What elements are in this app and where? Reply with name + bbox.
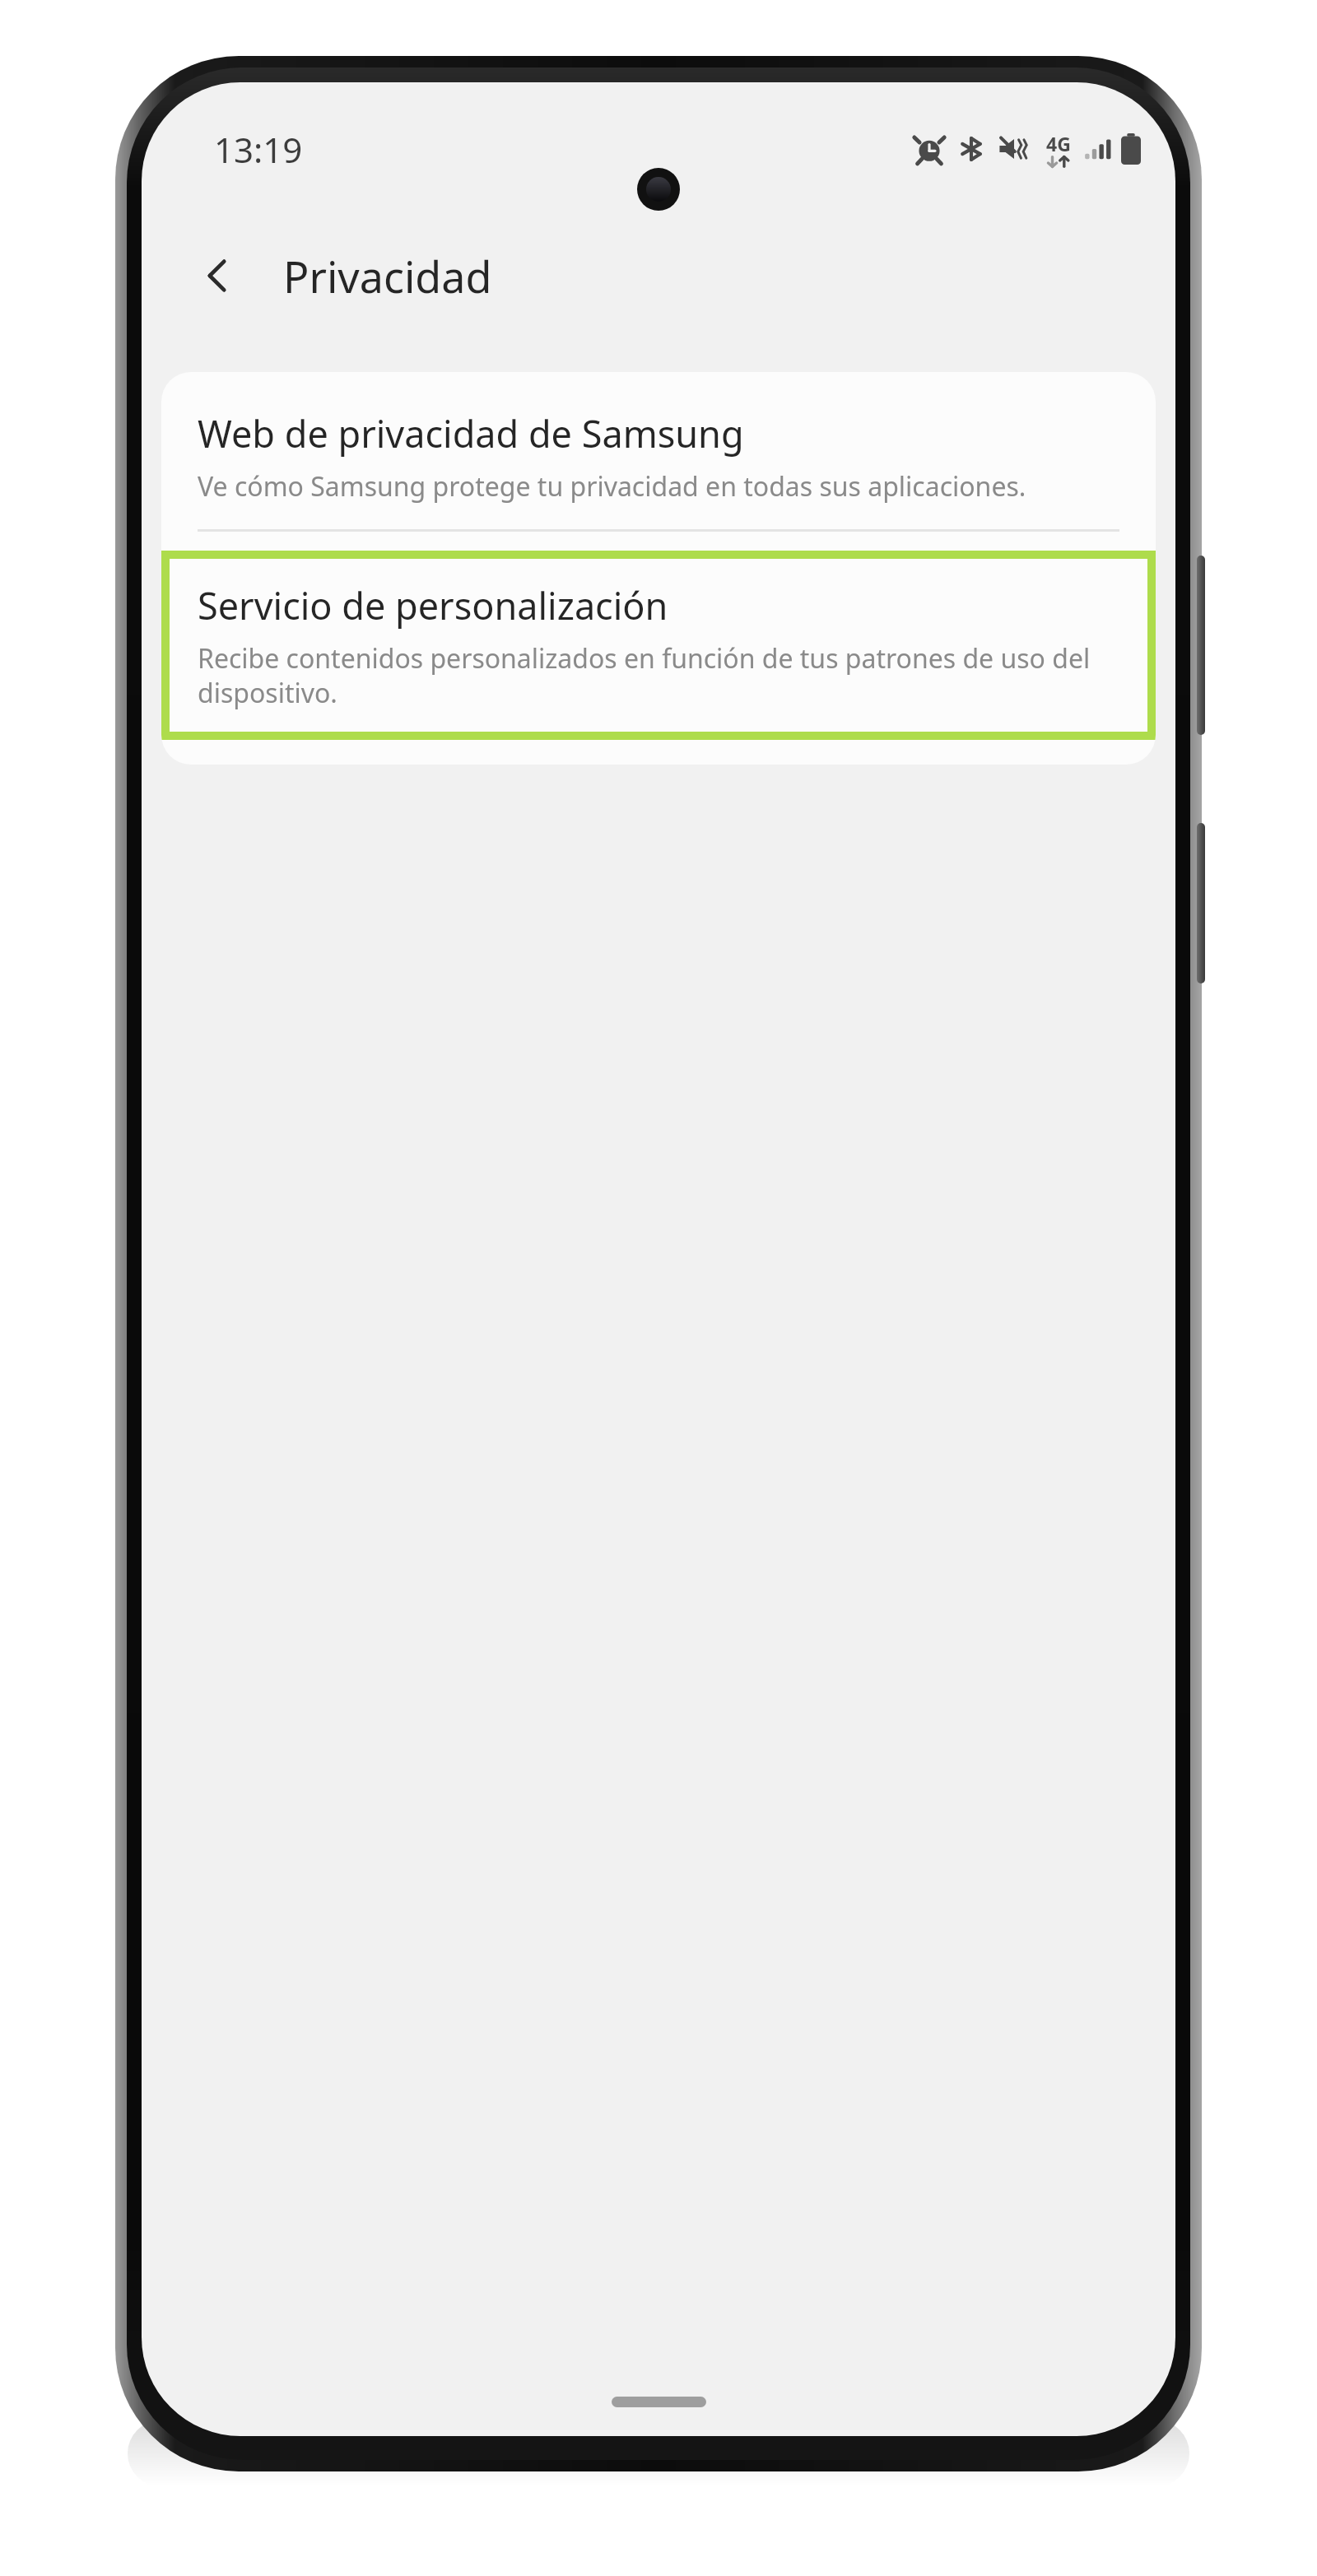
button[interactable]: Atrás — [178, 236, 257, 315]
staticText: 13:19 — [214, 126, 303, 173]
staticText: Recibe contenidos personalizados en func… — [198, 640, 1119, 710]
button[interactable]: Servicio de personalización — [170, 559, 1147, 732]
staticText: 4G — [1046, 131, 1071, 156]
button[interactable]: Web de privacidad de Samsung — [161, 372, 1156, 529]
staticText: Servicio de personalización — [198, 580, 668, 630]
staticText: Privacidad — [283, 247, 492, 305]
staticText: Web de privacidad de Samsung — [198, 408, 744, 458]
staticText: Ve cómo Samsung protege tu privacidad en… — [198, 468, 1026, 505]
